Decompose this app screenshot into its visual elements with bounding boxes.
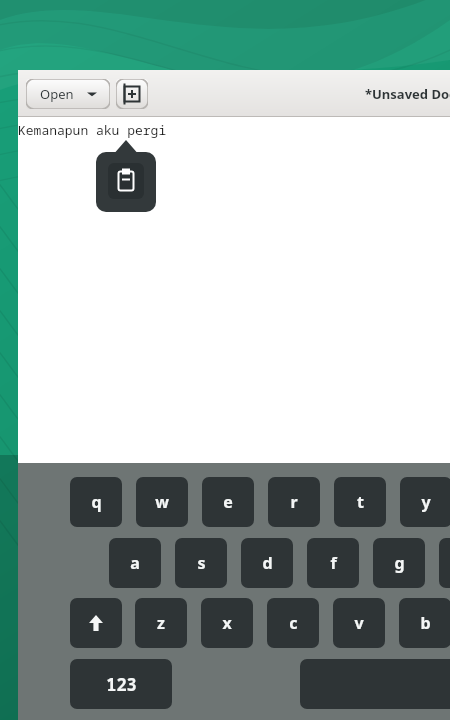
staticText: Open bbox=[40, 85, 74, 103]
staticText: z bbox=[157, 612, 165, 634]
button[interactable]: g bbox=[373, 538, 425, 588]
staticText: c bbox=[289, 612, 298, 634]
staticText: w bbox=[155, 491, 169, 513]
button[interactable]: f bbox=[307, 538, 359, 588]
button[interactable]: Paste bbox=[108, 163, 144, 199]
staticText: a bbox=[130, 552, 140, 574]
button[interactable]: q bbox=[70, 477, 122, 527]
button[interactable]: Open bbox=[26, 79, 110, 109]
button[interactable]: v bbox=[333, 598, 385, 648]
staticText: Kemanapun aku pergi bbox=[18, 121, 167, 139]
staticText: d bbox=[262, 552, 273, 574]
button[interactable]: Shift bbox=[70, 598, 122, 648]
staticText: b bbox=[420, 612, 431, 634]
button[interactable] bbox=[300, 659, 450, 709]
staticText: x bbox=[222, 612, 232, 634]
staticText: 123 bbox=[106, 673, 137, 696]
staticText: s bbox=[197, 552, 206, 574]
button[interactable]: c bbox=[267, 598, 319, 648]
button[interactable]: t bbox=[334, 477, 386, 527]
button[interactable]: d bbox=[241, 538, 293, 588]
button[interactable]: w bbox=[136, 477, 188, 527]
button[interactable]: h bbox=[439, 538, 450, 588]
staticText: v bbox=[354, 612, 364, 634]
staticText: y bbox=[421, 491, 431, 513]
staticText: g bbox=[394, 552, 405, 574]
button[interactable]: b bbox=[399, 598, 450, 648]
staticText: f bbox=[330, 552, 337, 574]
button[interactable]: a bbox=[109, 538, 161, 588]
staticText: q bbox=[91, 491, 102, 513]
staticText: r bbox=[290, 491, 298, 513]
button[interactable]: 123 bbox=[70, 659, 172, 709]
button[interactable]: New document bbox=[116, 79, 148, 109]
staticText: t bbox=[357, 491, 364, 513]
button[interactable]: r bbox=[268, 477, 320, 527]
button[interactable]: e bbox=[202, 477, 254, 527]
staticText: *Unsaved Document 1 bbox=[365, 85, 450, 103]
button[interactable]: s bbox=[175, 538, 227, 588]
button[interactable]: x bbox=[201, 598, 253, 648]
button[interactable]: z bbox=[135, 598, 187, 648]
staticText: e bbox=[223, 491, 233, 513]
button[interactable]: y bbox=[400, 477, 450, 527]
